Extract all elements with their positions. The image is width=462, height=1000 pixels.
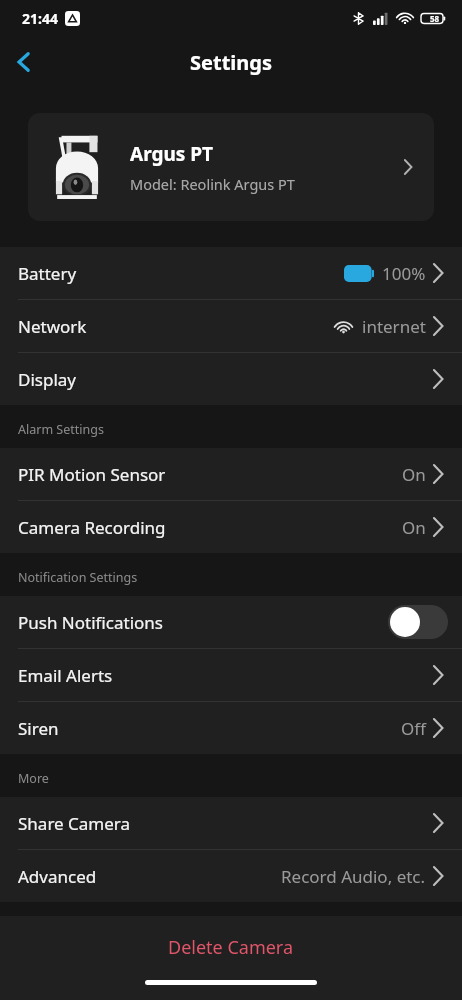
staticText: On: [402, 516, 426, 539]
button[interactable]: Share Camera: [0, 797, 462, 849]
button[interactable]: Push Notifications toggle: [388, 605, 448, 639]
staticText: PIR Motion Sensor: [18, 463, 166, 486]
staticText: Display: [18, 368, 76, 391]
button[interactable]: Display: [0, 353, 462, 405]
staticText: On: [402, 463, 426, 486]
button[interactable]: Push Notifications: [0, 596, 462, 648]
staticText: Share Camera: [18, 812, 131, 835]
button[interactable]: Network: [0, 300, 462, 352]
button[interactable]: Back: [0, 38, 48, 86]
staticText: Camera Recording: [18, 516, 166, 539]
staticText: Email Alerts: [18, 664, 113, 687]
staticText: Notification Settings: [18, 569, 138, 586]
staticText: Argus PT: [130, 141, 214, 167]
button[interactable]: Advanced: [0, 850, 462, 902]
button[interactable]: Siren: [0, 702, 462, 754]
staticText: More: [18, 770, 49, 787]
staticText: Off: [401, 717, 426, 740]
staticText: Battery: [18, 262, 77, 285]
button[interactable]: PIR Motion Sensor: [0, 448, 462, 500]
button[interactable]: Delete Camera: [0, 916, 462, 978]
button[interactable]: Email Alerts: [0, 649, 462, 701]
staticText: Alarm Settings: [18, 421, 104, 438]
staticText: Record Audio, etc.: [281, 865, 426, 888]
button[interactable]: Battery: [0, 247, 462, 299]
staticText: Siren: [18, 717, 59, 740]
staticText: Network: [18, 315, 87, 338]
staticText: 100%: [382, 262, 426, 285]
staticText: 21:44: [22, 9, 58, 28]
staticText: Settings: [190, 49, 272, 76]
button[interactable]: Argus PT: [28, 113, 434, 221]
staticText: Advanced: [18, 865, 97, 888]
button[interactable]: Camera Recording: [0, 501, 462, 553]
staticText: internet: [362, 315, 426, 338]
staticText: Delete Camera: [168, 935, 294, 960]
staticText: Model: Reolink Argus PT: [130, 174, 295, 194]
staticText: 58: [430, 13, 440, 24]
staticText: Push Notifications: [18, 611, 163, 634]
